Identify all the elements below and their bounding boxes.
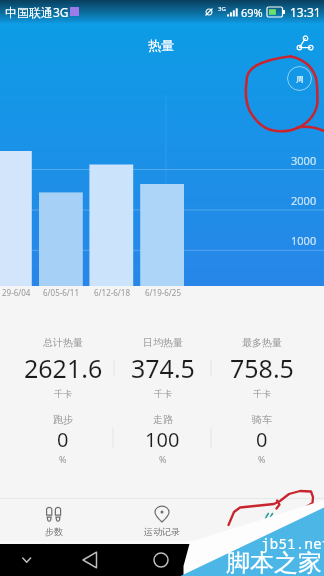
staticText: % [59,453,67,465]
staticText: 跑步 [53,413,73,426]
staticText: 2621.6 [24,351,103,385]
staticText: 758.5 [230,351,294,385]
staticText: jb51.net [261,534,324,553]
staticText: 最多热量 [242,336,282,349]
staticText: 骑车 [252,413,272,426]
button[interactable]: 心率 [216,499,324,544]
staticText: 6/19-6/25 [145,287,181,298]
staticText: 100 [145,426,180,453]
button[interactable]: 走路 [113,413,212,467]
staticText: % [159,453,167,465]
button[interactable]: Back [75,546,105,576]
staticText: 0 [256,426,268,453]
button[interactable]: 跑步 [13,413,113,467]
staticText: 69% [241,5,263,20]
button[interactable]: Share [292,30,320,58]
button[interactable]: 骑车 [212,413,311,467]
staticText: 千卡 [154,388,172,399]
staticText: 运动记录 [144,526,180,537]
staticText: 热量 [148,37,174,53]
staticText: 13:31 [290,4,321,20]
button[interactable]: Home [146,546,176,576]
staticText: 千卡 [54,388,72,399]
staticText: 周 [296,74,304,84]
button[interactable]: 周 [287,66,312,91]
staticText: % [258,453,266,465]
staticText: 2000 [291,193,317,208]
staticText: 走路 [153,413,173,426]
button[interactable]: 最多热量 [212,336,311,402]
staticText: 3000 [291,153,317,168]
staticText: 脚本之家 [226,548,322,576]
staticText: 中国联通3G [5,4,69,20]
button[interactable]: 运动记录 [108,499,216,544]
staticText: 374.5 [131,351,195,385]
button[interactable]: Hide navigation bar [12,546,42,576]
staticText: 千卡 [253,388,271,399]
staticText: 1000 [291,233,317,248]
staticText: 总计热量 [43,336,83,349]
button[interactable]: 总计热量 [13,336,113,402]
staticText: 步数 [45,526,63,537]
staticText: 日均热量 [143,336,183,349]
button[interactable]: Recent apps [217,546,247,576]
staticText: 3G [218,5,226,13]
button[interactable]: 步数 [0,499,108,544]
staticText: 6/05-6/11 [43,287,79,298]
staticText: 29-6/04 [2,287,31,298]
button[interactable]: 日均热量 [113,336,212,402]
staticText: 6/12-6/18 [94,287,130,298]
staticText: 0 [57,426,69,453]
